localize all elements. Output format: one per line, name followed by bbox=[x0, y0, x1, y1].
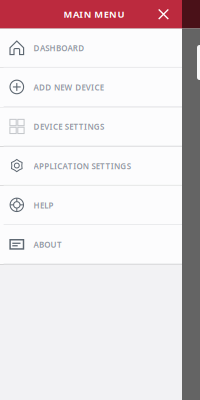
staticText: HELP bbox=[34, 200, 54, 211]
button[interactable]: DASHBOARD bbox=[0, 28, 182, 68]
staticText: ABOUT bbox=[34, 239, 62, 250]
staticText: ADD NEW DEVICE bbox=[34, 82, 104, 93]
button[interactable]: Close menu bbox=[151, 2, 175, 26]
button[interactable]: ADD NEW DEVICE bbox=[0, 68, 182, 107]
staticText: APPLICATION SETTINGS bbox=[34, 161, 131, 171]
button[interactable]: ABOUT bbox=[0, 225, 182, 264]
button[interactable]: DEVICE SETTINGS bbox=[0, 107, 182, 146]
button[interactable]: HELP bbox=[0, 186, 182, 225]
staticText: DASHBOARD bbox=[34, 43, 84, 53]
staticText: MAIN MENU bbox=[64, 8, 124, 20]
button[interactable]: APPLICATION SETTINGS bbox=[0, 146, 182, 186]
staticText: DEVICE SETTINGS bbox=[34, 121, 104, 132]
